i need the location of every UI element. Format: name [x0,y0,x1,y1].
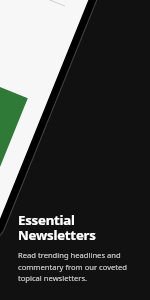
staticText: Essential Newsletters [18,211,138,244]
button[interactable]: MIT Technology Review newsletter preview [0,0,150,200]
staticText: Read trending headlines and commentary f… [18,250,127,283]
